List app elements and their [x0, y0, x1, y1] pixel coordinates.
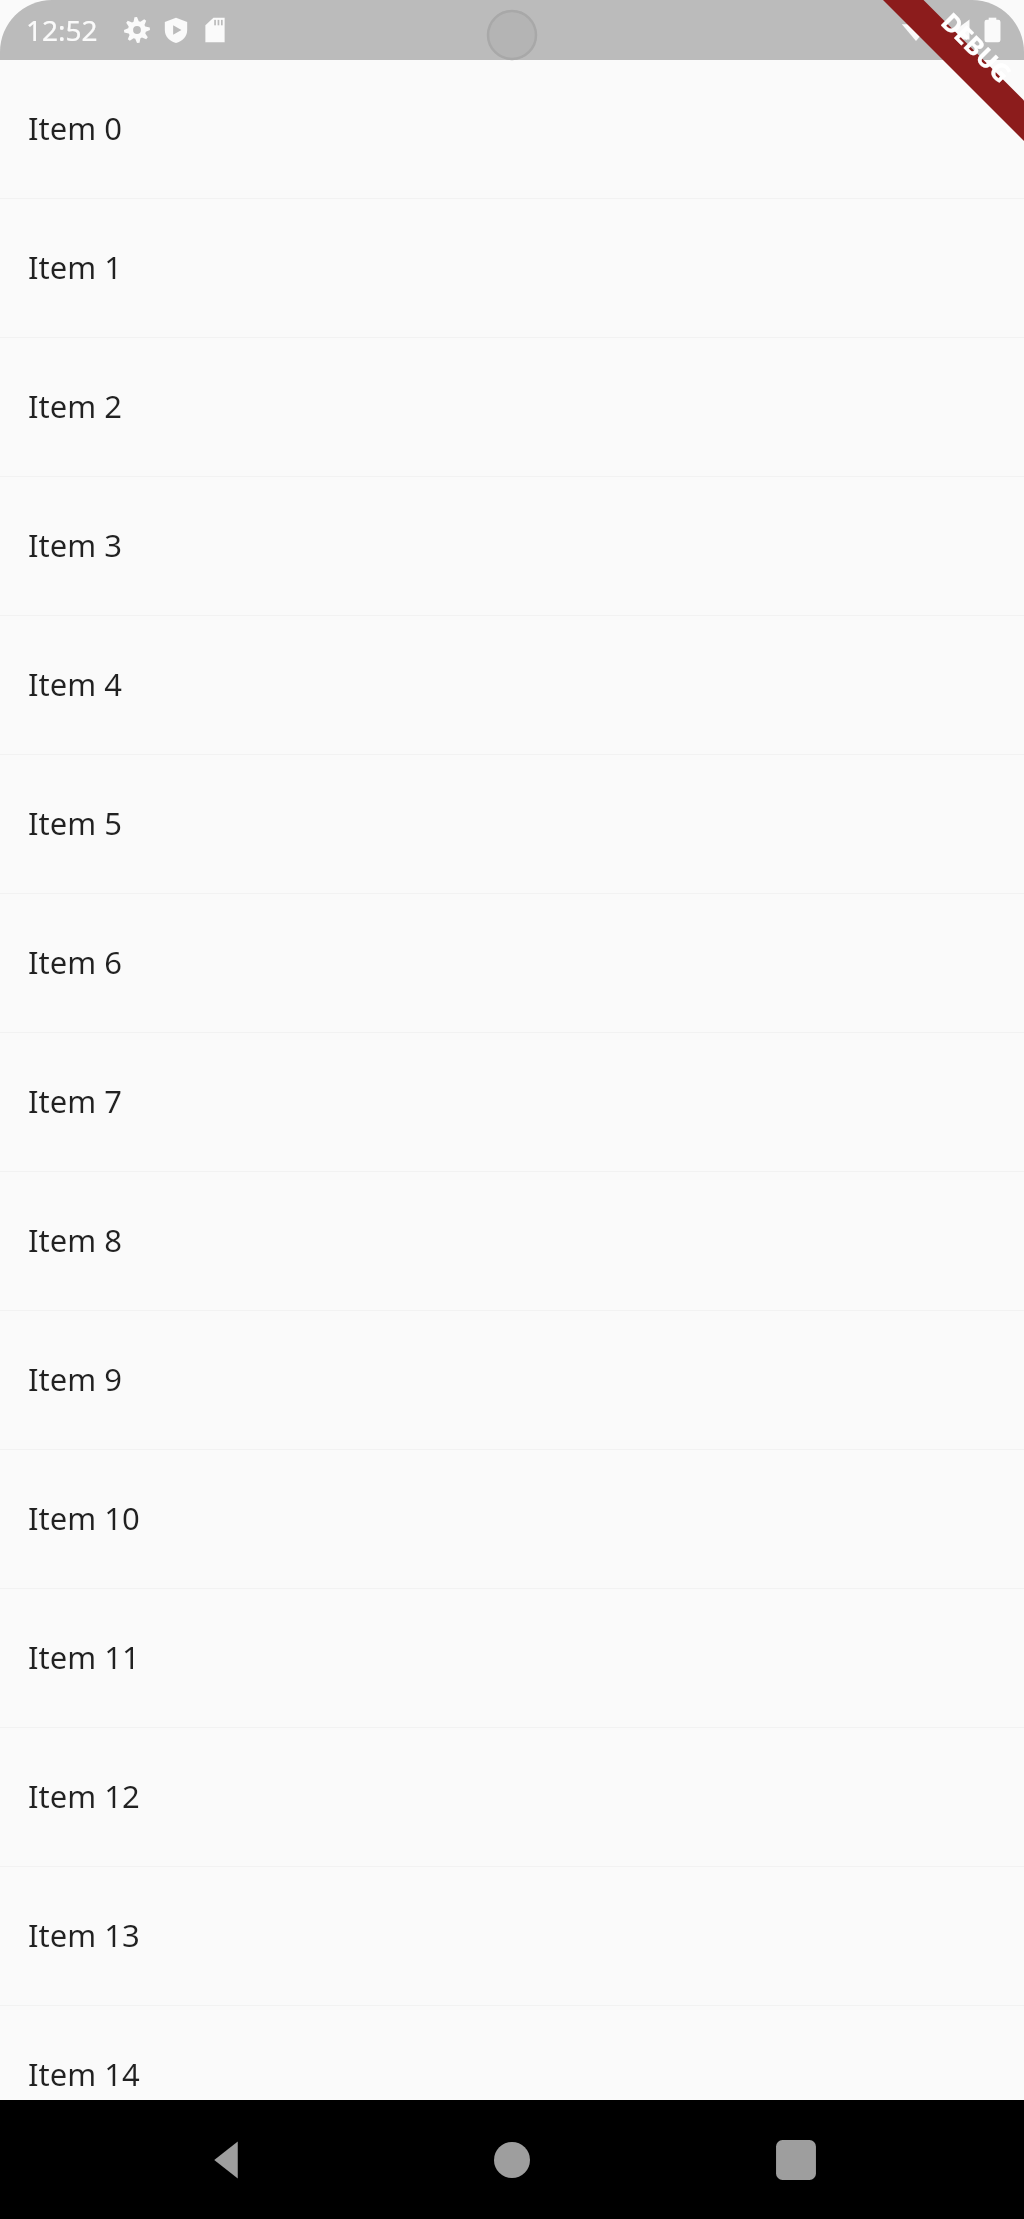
button[interactable]: Recent apps: [716, 2100, 876, 2219]
staticText: Item 5: [28, 802, 122, 844]
button[interactable]: Item 0: [0, 60, 1024, 199]
button[interactable]: Item 4: [0, 616, 1024, 755]
staticText: 12:52: [26, 11, 98, 49]
button[interactable]: Item 6: [0, 894, 1024, 1033]
staticText: Item 9: [28, 1358, 122, 1400]
staticText: Item 13: [28, 1914, 140, 1956]
button[interactable]: Item 1: [0, 199, 1024, 338]
button[interactable]: Item 5: [0, 755, 1024, 894]
staticText: Item 0: [28, 107, 122, 149]
button[interactable]: Item 7: [0, 1033, 1024, 1172]
staticText: Item 14: [28, 2053, 140, 2095]
button[interactable]: Item 13: [0, 1867, 1024, 2006]
staticText: Item 7: [28, 1080, 122, 1122]
staticText: Item 6: [28, 941, 122, 983]
staticText: Item 8: [28, 1219, 122, 1261]
button[interactable]: Item 10: [0, 1450, 1024, 1589]
button[interactable]: Item 14: [0, 2006, 1024, 2145]
staticText: Item 10: [28, 1497, 140, 1539]
staticText: Item 2: [28, 385, 122, 427]
staticText: Item 11: [28, 1636, 140, 1678]
staticText: DEBUG: [935, 5, 1019, 89]
button[interactable]: Item 11: [0, 1589, 1024, 1728]
button[interactable]: Item 9: [0, 1311, 1024, 1450]
staticText: Item 1: [28, 246, 122, 288]
button[interactable]: Item 3: [0, 477, 1024, 616]
button[interactable]: Item 8: [0, 1172, 1024, 1311]
button[interactable]: Item 2: [0, 338, 1024, 477]
staticText: Item 12: [28, 1775, 140, 1817]
button[interactable]: Back: [146, 2100, 306, 2219]
button[interactable]: Home: [432, 2100, 592, 2219]
staticText: Item 4: [28, 663, 122, 705]
staticText: Item 3: [28, 524, 122, 566]
button[interactable]: Item 12: [0, 1728, 1024, 1867]
